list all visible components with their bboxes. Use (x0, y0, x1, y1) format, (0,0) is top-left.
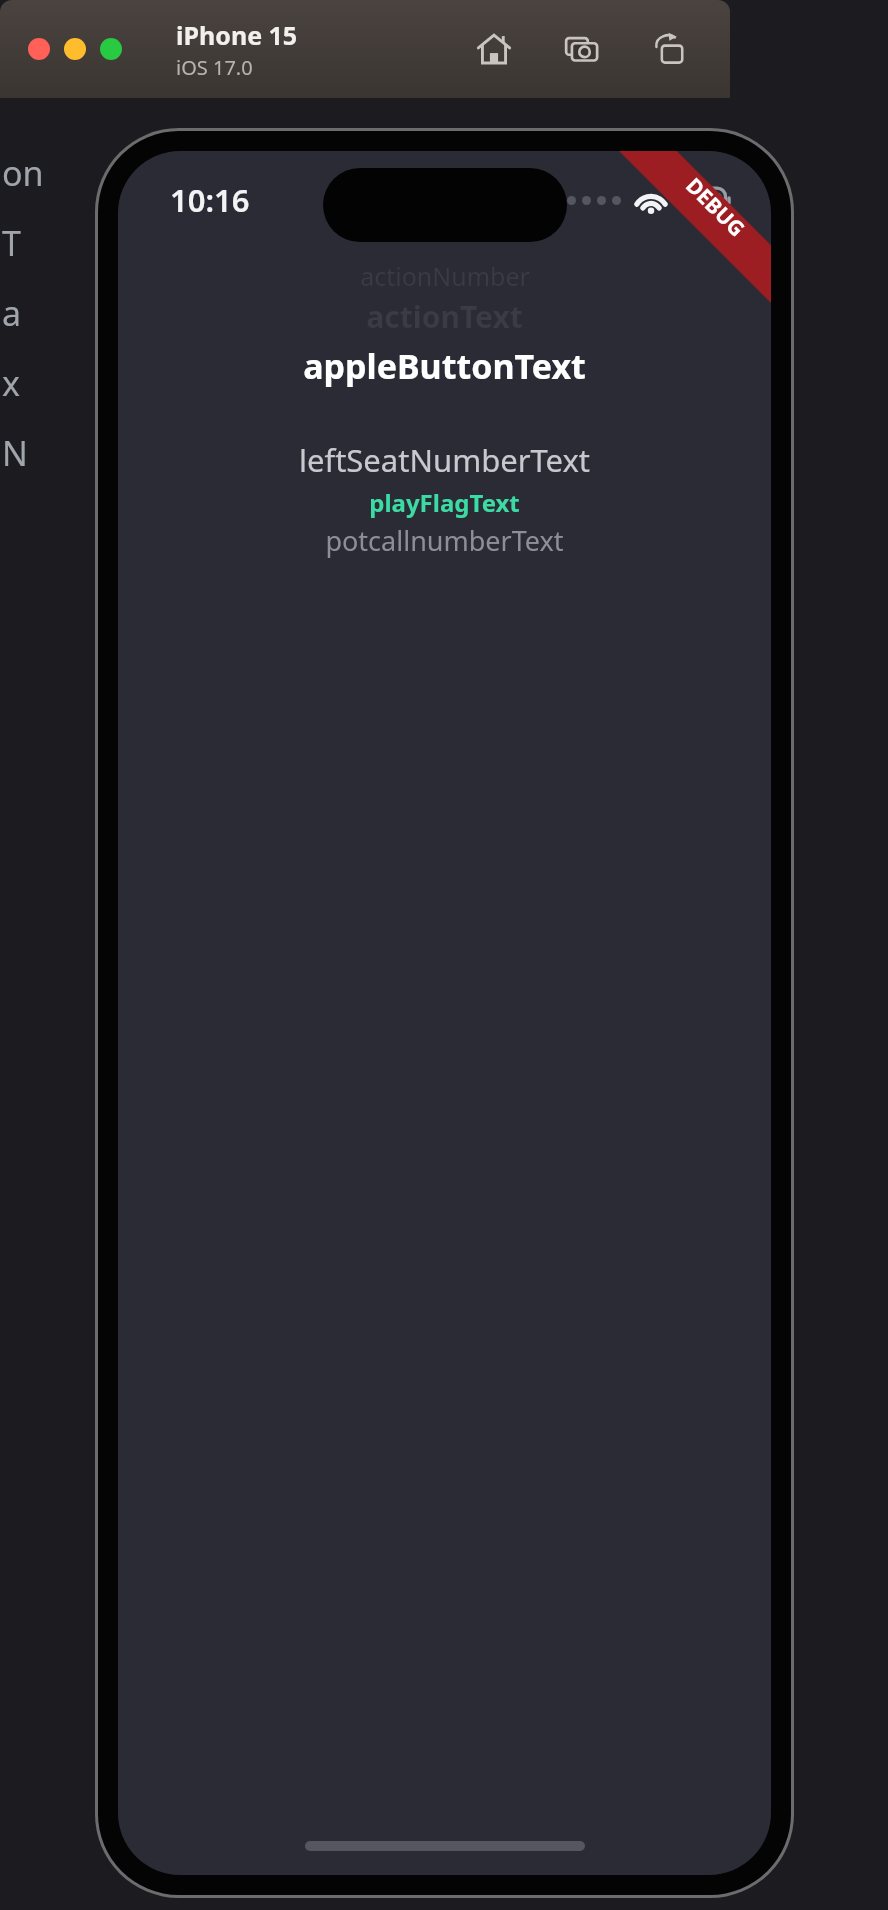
button[interactable]: Screenshot (558, 25, 606, 73)
button[interactable]: Zoom (100, 38, 122, 60)
staticText: a (2, 290, 22, 336)
staticText: N (2, 430, 28, 476)
staticText: x (2, 360, 20, 406)
staticText: appleButtonText (303, 343, 586, 389)
staticText: DEBUG (679, 171, 751, 243)
other: Battery (681, 188, 731, 213)
staticText: actionText (366, 296, 523, 337)
staticText: leftSeatNumberText (299, 439, 590, 481)
staticText: 10:16 (170, 179, 250, 221)
button[interactable]: Rotate (646, 25, 694, 73)
staticText: T (2, 220, 21, 266)
other: Wi-Fi (634, 188, 668, 213)
staticText: playFlagText (369, 486, 520, 519)
staticText: potcallnumberText (325, 522, 564, 559)
staticText: iOS 17.0 (176, 54, 253, 81)
staticText: iPhone 15 (176, 18, 298, 52)
staticText: on (2, 150, 44, 196)
button[interactable]: Home (470, 25, 518, 73)
button[interactable]: Close (28, 38, 50, 60)
staticText: actionNumber (360, 259, 530, 293)
button[interactable]: Minimise (64, 38, 86, 60)
